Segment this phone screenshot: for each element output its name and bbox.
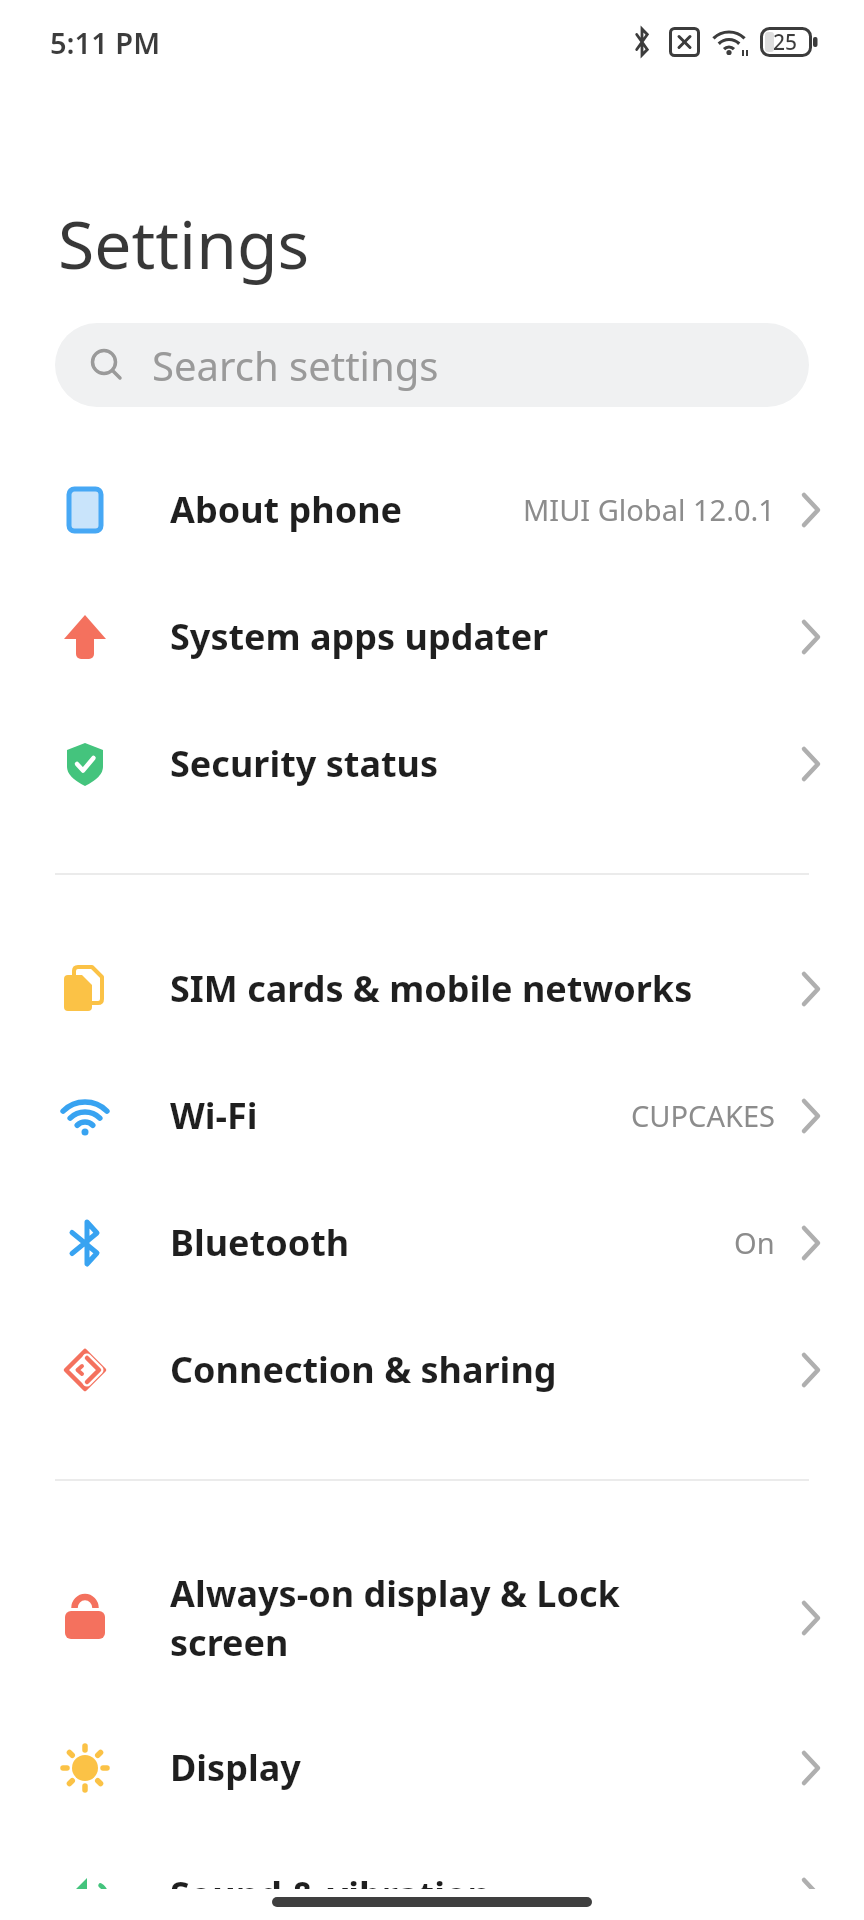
staticText: 25 <box>773 28 798 57</box>
staticText: MIUI Global 12.0.1 <box>523 490 775 529</box>
staticText: About phone <box>170 485 403 534</box>
staticText: SIM cards & mobile networks <box>170 964 693 1013</box>
staticText: System apps updater <box>170 612 549 661</box>
button[interactable]: Wi-Fi <box>0 1052 864 1179</box>
staticText: Sound & vibration <box>170 1870 491 1919</box>
staticText: Display <box>170 1743 301 1792</box>
button[interactable]: Display <box>0 1704 864 1831</box>
staticText: Connection & sharing <box>170 1345 557 1394</box>
staticText: CUPCAKES <box>631 1096 775 1135</box>
staticText: 5:11 PM <box>50 23 161 62</box>
staticText: Bluetooth <box>170 1218 350 1267</box>
staticText: Search settings <box>152 338 439 392</box>
staticText: On <box>734 1223 775 1262</box>
button[interactable]: Search settings <box>55 323 809 407</box>
button[interactable]: Always-on display & Lock screen <box>0 1531 864 1704</box>
staticText: Settings <box>58 198 310 288</box>
button[interactable]: SIM cards & mobile networks <box>0 925 864 1052</box>
button[interactable]: Bluetooth <box>0 1179 864 1306</box>
button[interactable]: About phone <box>0 446 864 573</box>
staticText: Always-on display & Lock screen <box>170 1569 620 1667</box>
button[interactable]: Security status <box>0 700 864 827</box>
staticText: Security status <box>170 739 439 788</box>
button[interactable]: Sound & vibration <box>0 1831 864 1920</box>
button[interactable]: System apps updater <box>0 573 864 700</box>
staticText: Wi-Fi <box>170 1091 258 1140</box>
button[interactable]: Connection & sharing <box>0 1306 864 1433</box>
